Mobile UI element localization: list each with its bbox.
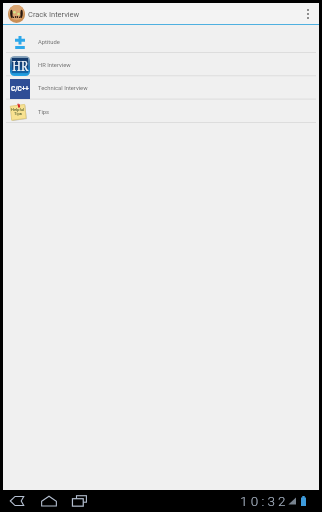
button[interactable]: Home <box>41 495 57 507</box>
staticText: HR Interview <box>38 62 71 69</box>
staticText: HR <box>12 56 29 75</box>
staticText: C/C++ <box>11 85 29 93</box>
staticText: Tips <box>14 111 22 116</box>
staticText: Aptitude <box>38 39 60 46</box>
button[interactable]: More options <box>301 3 315 24</box>
button[interactable]: C/C++ <box>3 75 319 98</box>
staticText: Technical Interview <box>38 85 88 92</box>
staticText: Crack Interview <box>28 10 80 19</box>
button[interactable]: Recent apps <box>72 495 87 507</box>
button[interactable]: Back <box>10 495 24 507</box>
button[interactable]: Aptitude <box>3 29 319 52</box>
button[interactable]: HR <box>3 52 319 75</box>
staticText: Tips <box>38 109 50 116</box>
staticText: Helpful <box>11 107 25 112</box>
staticText: 10:32 <box>240 493 289 509</box>
button[interactable]: Helpful <box>3 99 319 122</box>
